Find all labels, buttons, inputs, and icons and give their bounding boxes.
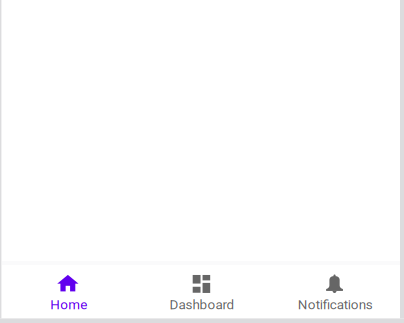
button[interactable]: Home <box>2 265 135 318</box>
staticText: Home <box>50 297 87 313</box>
staticText: Notifications <box>298 297 373 313</box>
staticText: Dashboard <box>169 297 234 313</box>
button[interactable]: Dashboard <box>135 265 269 318</box>
button[interactable]: Notifications <box>269 265 402 318</box>
